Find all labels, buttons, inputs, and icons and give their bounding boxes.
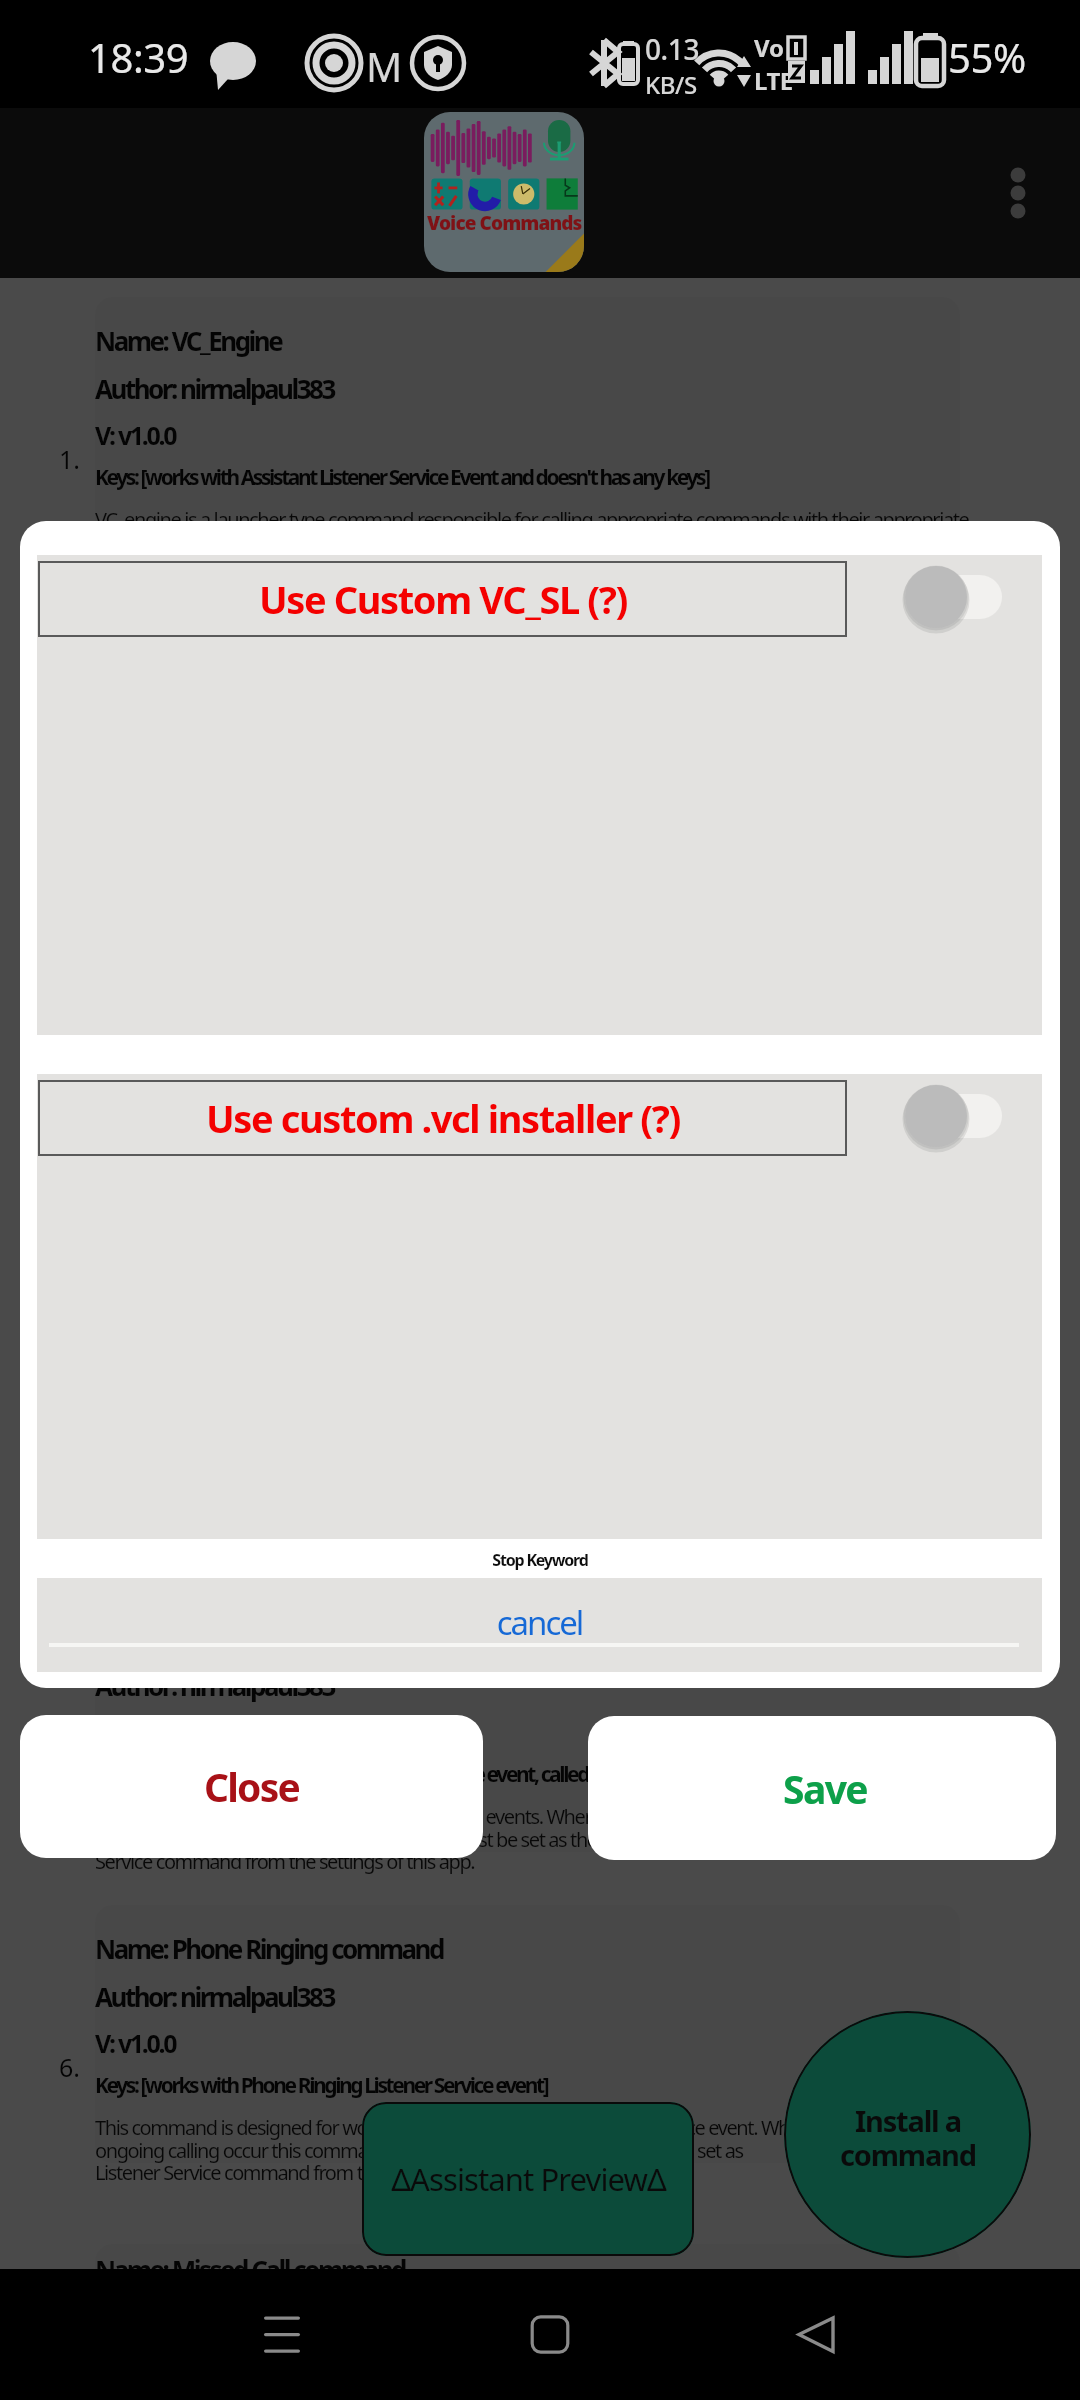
staticText: V: v1.0.0 xyxy=(95,418,176,452)
button[interactable]: Home xyxy=(490,2269,610,2400)
staticText: Keys: [works with Assistant Listener Ser… xyxy=(95,463,709,492)
staticText: Install a command xyxy=(840,2101,976,2174)
staticText: This command is designed for work with t… xyxy=(95,1803,980,1875)
staticText: This command is designed for work with t… xyxy=(95,2114,980,2186)
button[interactable]: Install a command xyxy=(784,2011,1031,2258)
staticText: VC_engine is a launcher type command res… xyxy=(95,506,980,556)
staticText: 18:39 xyxy=(88,30,189,84)
staticText: ΔAssistant PreviewΔ xyxy=(391,2158,666,2200)
staticText: Stop Keyword xyxy=(20,1549,1060,1571)
staticText: Voice Commands xyxy=(427,210,582,236)
button[interactable]: ΔAssistant PreviewΔ xyxy=(362,2102,694,2256)
button[interactable]: More options xyxy=(980,155,1056,231)
staticText: Author: nirmalpaul383 xyxy=(95,371,334,406)
staticText: 1. xyxy=(59,442,81,476)
staticText: Name: VC_Engine xyxy=(95,323,282,358)
button[interactable]: Recents xyxy=(222,2269,342,2400)
staticText: M xyxy=(366,39,403,93)
staticText: KB/S xyxy=(645,68,697,101)
staticText: Keys: [works with Phone Ringing Listener… xyxy=(95,2071,548,2100)
button[interactable]: Use custom .vcl installer (?) xyxy=(38,1080,847,1156)
staticText: Name: Phone Ringing command xyxy=(95,1931,443,1966)
staticText: 0.13 xyxy=(645,30,700,68)
staticText: Use Custom VC_SL (?) xyxy=(259,573,627,625)
button[interactable]: Close xyxy=(20,1715,483,1858)
staticText: 6. xyxy=(59,2050,81,2084)
staticText: 55% xyxy=(948,30,1026,84)
staticText: Close xyxy=(204,1760,299,1813)
staticText: LTE xyxy=(754,64,793,97)
staticText: Save xyxy=(783,1762,868,1815)
staticText: Vo xyxy=(754,31,785,64)
button[interactable] xyxy=(879,1074,1019,1164)
staticText: Author: nirmalpaul383 xyxy=(95,1668,334,1703)
staticText: Keys: [works with Outgoing Call Listener… xyxy=(95,1760,666,1789)
button[interactable] xyxy=(879,555,1019,645)
button[interactable]: Back xyxy=(756,2269,876,2400)
staticText: Name: Missed Call command xyxy=(95,2252,406,2287)
button[interactable]: cancel xyxy=(37,1600,1042,1645)
button[interactable]: Save xyxy=(588,1716,1056,1860)
staticText: Name: Outgoing Call command xyxy=(95,1620,433,1655)
staticText: Use custom .vcl installer (?) xyxy=(206,1092,680,1144)
staticText: V: v1.0.0 xyxy=(95,2026,176,2060)
staticText: Author: nirmalpaul383 xyxy=(95,1979,334,2014)
button[interactable]: Use Custom VC_SL (?) xyxy=(38,561,847,637)
